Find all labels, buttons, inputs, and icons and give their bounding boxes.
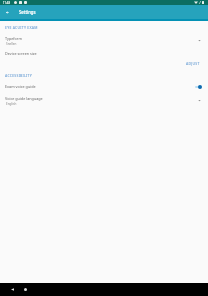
staticText: Typeform: [5, 35, 22, 41]
staticText: Exam voice guide: [5, 83, 169, 89]
staticText: EYE ACUITY EXAM: [5, 25, 38, 30]
staticText: Device screen size: [5, 50, 175, 56]
button[interactable]: Home: [19, 283, 32, 296]
button[interactable]: ADJUST: [182, 59, 206, 68]
staticText: ACCESSIBILITY: [5, 73, 33, 78]
staticText: Settings: [19, 9, 36, 16]
staticText: Snellen: [6, 41, 17, 46]
button[interactable]: Exam voice guide: [0, 82, 208, 90]
button[interactable]: Back: [6, 283, 19, 296]
button[interactable]: Navigate up: [0, 5, 14, 19]
button[interactable]: Typeform: [0, 34, 208, 46]
staticText: English: [6, 101, 16, 106]
button[interactable]: Voice guide language: [0, 94, 208, 106]
staticText: ADJUST: [186, 61, 200, 66]
staticText: 11:48: [3, 0, 10, 5]
staticText: Voice guide language: [5, 95, 43, 101]
button[interactable]: Device screen size: [0, 49, 208, 56]
